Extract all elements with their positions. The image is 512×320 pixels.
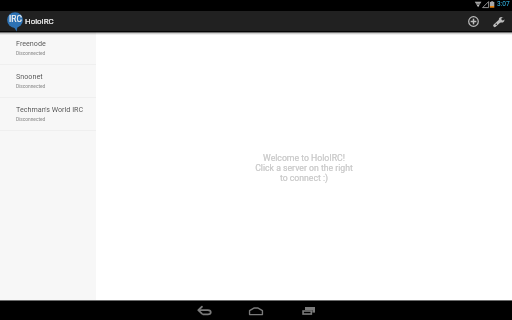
button[interactable]: Snoonet: [0, 65, 96, 98]
staticText: Disconnected: [16, 84, 46, 90]
staticText: Welcome to HoloIRC! Click a server on th…: [255, 153, 353, 183]
staticText: Disconnected: [16, 51, 46, 57]
staticText: Snoonet: [16, 72, 43, 80]
button[interactable]: Home: [242, 301, 270, 320]
staticText: Disconnected: [16, 117, 46, 123]
staticText: 3:07: [497, 0, 510, 8]
button[interactable]: Add server: [460, 11, 486, 32]
staticText: HoloIRC: [25, 17, 54, 26]
button[interactable]: Back: [191, 301, 219, 320]
button[interactable]: Recent apps: [294, 301, 322, 320]
staticText: Techman's World IRC: [16, 105, 84, 113]
button[interactable]: Settings: [486, 11, 512, 32]
button[interactable]: IRC: [0, 11, 512, 32]
staticText: IRC: [9, 14, 22, 24]
staticText: Freenode: [16, 39, 46, 47]
button[interactable]: Techman's World IRC: [0, 98, 96, 131]
button[interactable]: Freenode: [0, 32, 96, 65]
